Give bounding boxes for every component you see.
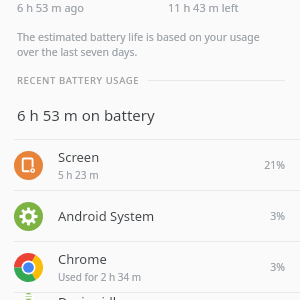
staticText: Device idle <box>58 293 124 300</box>
button[interactable]: Chrome battery usage <box>0 242 300 292</box>
staticText: 6 h 53 m ago <box>17 0 84 15</box>
button[interactable]: Android System battery usage <box>0 191 300 241</box>
other: Device idle battery usage <box>14 293 43 300</box>
button[interactable]: Device idle battery usage <box>0 293 300 300</box>
staticText: 3% <box>270 260 285 274</box>
staticText: The estimated battery life is based on y… <box>17 30 282 59</box>
other: Chrome battery usage <box>14 253 43 282</box>
staticText: Used for 2 h 34 m <box>58 270 142 284</box>
other: Android System battery usage <box>14 202 43 231</box>
staticText: RECENT BATTERY USAGE <box>17 74 140 87</box>
button[interactable]: Screen battery usage <box>0 140 300 190</box>
staticText: 21% <box>264 158 285 172</box>
staticText: 11 h 43 m left <box>168 0 239 15</box>
staticText: 3% <box>270 209 285 223</box>
staticText: Android System <box>58 207 155 225</box>
staticText: 6 h 53 m on battery <box>17 105 155 125</box>
staticText: Chrome <box>58 250 107 268</box>
other: Screen battery usage <box>14 151 43 180</box>
staticText: 5 h 23 m <box>58 168 99 182</box>
staticText: Screen <box>58 148 100 166</box>
